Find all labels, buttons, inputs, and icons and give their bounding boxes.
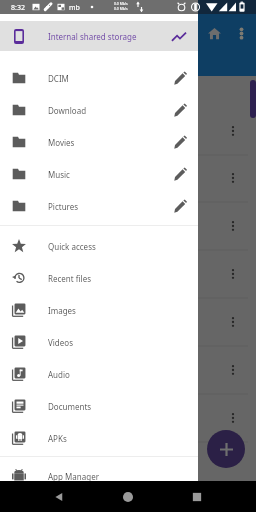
staticText: mb	[69, 3, 80, 13]
button[interactable]: DCIM	[0, 62, 198, 94]
button[interactable]: Item options	[227, 172, 239, 184]
button[interactable]: Item options	[227, 316, 239, 328]
button[interactable]: Internal shared storage	[0, 21, 198, 51]
staticText: 0.0 Mb/s 0.0 Mb/s	[114, 1, 128, 11]
button[interactable]: Home	[201, 20, 227, 46]
button[interactable]: Home	[119, 488, 137, 506]
button[interactable]: Videos	[0, 326, 198, 358]
staticText: App Manager	[48, 471, 99, 482]
staticText: Videos	[48, 337, 73, 348]
staticText: Music	[48, 169, 70, 180]
staticText: Documents	[48, 401, 92, 412]
button[interactable]: Images	[0, 294, 198, 326]
staticText: Audio	[48, 369, 70, 380]
button[interactable]: App Manager	[0, 460, 198, 492]
staticText: DCIM	[48, 73, 69, 84]
button[interactable]: Recent files	[0, 262, 198, 294]
button[interactable]: Pictures	[0, 190, 198, 222]
button[interactable]: Download	[0, 94, 198, 126]
button[interactable]: Item options	[227, 268, 239, 280]
button[interactable]: Add	[207, 430, 245, 468]
button[interactable]: Item options	[227, 125, 239, 137]
button[interactable]: Recents	[188, 488, 206, 506]
button[interactable]: Back	[50, 488, 68, 506]
staticText: Download	[48, 105, 87, 116]
button[interactable]: Item options	[227, 364, 239, 376]
button[interactable]: Item options	[227, 220, 239, 232]
button[interactable]: Audio	[0, 358, 198, 390]
button[interactable]: Documents	[0, 390, 198, 422]
button[interactable]: Movies	[0, 126, 198, 158]
staticText: Images	[48, 305, 76, 316]
button[interactable]: APKs	[0, 422, 198, 454]
staticText: APKs	[48, 433, 67, 444]
staticText: Pictures	[48, 201, 79, 212]
button[interactable]: More options	[228, 20, 254, 46]
staticText: 8:32	[11, 3, 25, 13]
button[interactable]: Quick access	[0, 230, 198, 262]
staticText: Movies	[48, 137, 75, 148]
staticText: Quick access	[48, 241, 96, 252]
staticText: Recent files	[48, 273, 91, 284]
button[interactable]: Music	[0, 158, 198, 190]
button[interactable]: Item options	[227, 412, 239, 424]
staticText: Internal shared storage	[48, 31, 137, 42]
